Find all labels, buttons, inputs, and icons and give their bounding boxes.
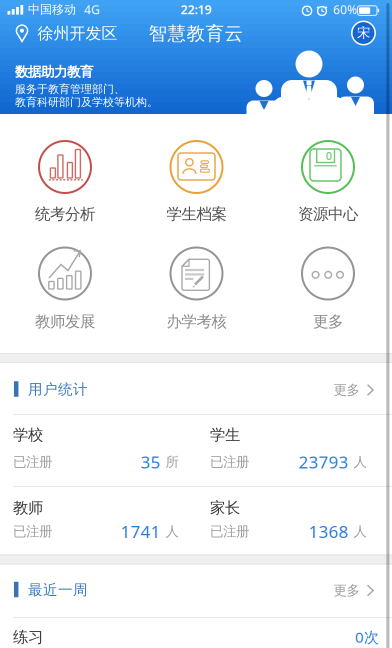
staticText: 学生	[210, 426, 240, 444]
staticText: 已注册	[210, 454, 249, 470]
staticText: 0次	[355, 627, 379, 647]
staticText: 35	[140, 451, 160, 473]
staticText: 数据助力教育	[15, 64, 93, 80]
button[interactable]: 统考分析	[35, 140, 95, 225]
staticText: 更多	[333, 582, 359, 599]
staticText: 办学考核	[166, 312, 226, 331]
staticText: 徐州开发区	[37, 24, 117, 43]
staticText: 已注册	[13, 523, 52, 540]
staticText: 智慧教育云	[148, 22, 243, 45]
staticText: 60%	[333, 1, 357, 17]
button[interactable]: 更多	[333, 582, 374, 599]
staticText: 用户统计	[28, 381, 88, 398]
button[interactable]: 资源中心	[298, 140, 358, 225]
staticText: 已注册	[13, 454, 52, 470]
staticText: 资源中心	[298, 204, 358, 223]
staticText: 更多	[333, 382, 359, 398]
staticText: 练习	[13, 627, 43, 646]
staticText: 教师	[13, 499, 43, 517]
staticText: 4G	[84, 1, 100, 17]
staticText: 教师发展	[35, 312, 95, 331]
staticText: 统考分析	[35, 204, 95, 223]
button[interactable]: 徐州开发区	[14, 23, 117, 43]
staticText: 教育科研部门及学校等机构。	[15, 95, 158, 109]
staticText: 学生档案	[166, 204, 226, 223]
button[interactable]: 学生档案	[166, 140, 226, 225]
button[interactable]: 办学考核	[166, 246, 226, 332]
staticText: 宋	[357, 25, 370, 41]
staticText: 最近一周	[28, 581, 88, 599]
button[interactable]: 更多	[301, 246, 355, 332]
staticText: 服务于教育管理部门、	[15, 82, 125, 96]
staticText: 已注册	[210, 523, 249, 540]
button[interactable]: 更多	[333, 382, 374, 398]
staticText: 1368	[308, 520, 348, 543]
staticText: 1741	[120, 520, 160, 543]
staticText: 23793	[298, 451, 348, 473]
staticText: 人	[353, 523, 366, 540]
staticText: 所	[165, 454, 178, 470]
staticText: 人	[165, 523, 178, 540]
button[interactable]: 教师发展	[35, 246, 95, 332]
staticText: 家长	[210, 499, 240, 517]
staticText: 学校	[13, 426, 43, 444]
button[interactable]: 用户	[351, 20, 376, 45]
button[interactable]: 练习	[13, 622, 379, 648]
staticText: 人	[353, 454, 366, 470]
staticText: 中国移动	[28, 2, 76, 17]
staticText: 更多	[313, 312, 343, 331]
staticText: 22:19	[180, 1, 211, 18]
